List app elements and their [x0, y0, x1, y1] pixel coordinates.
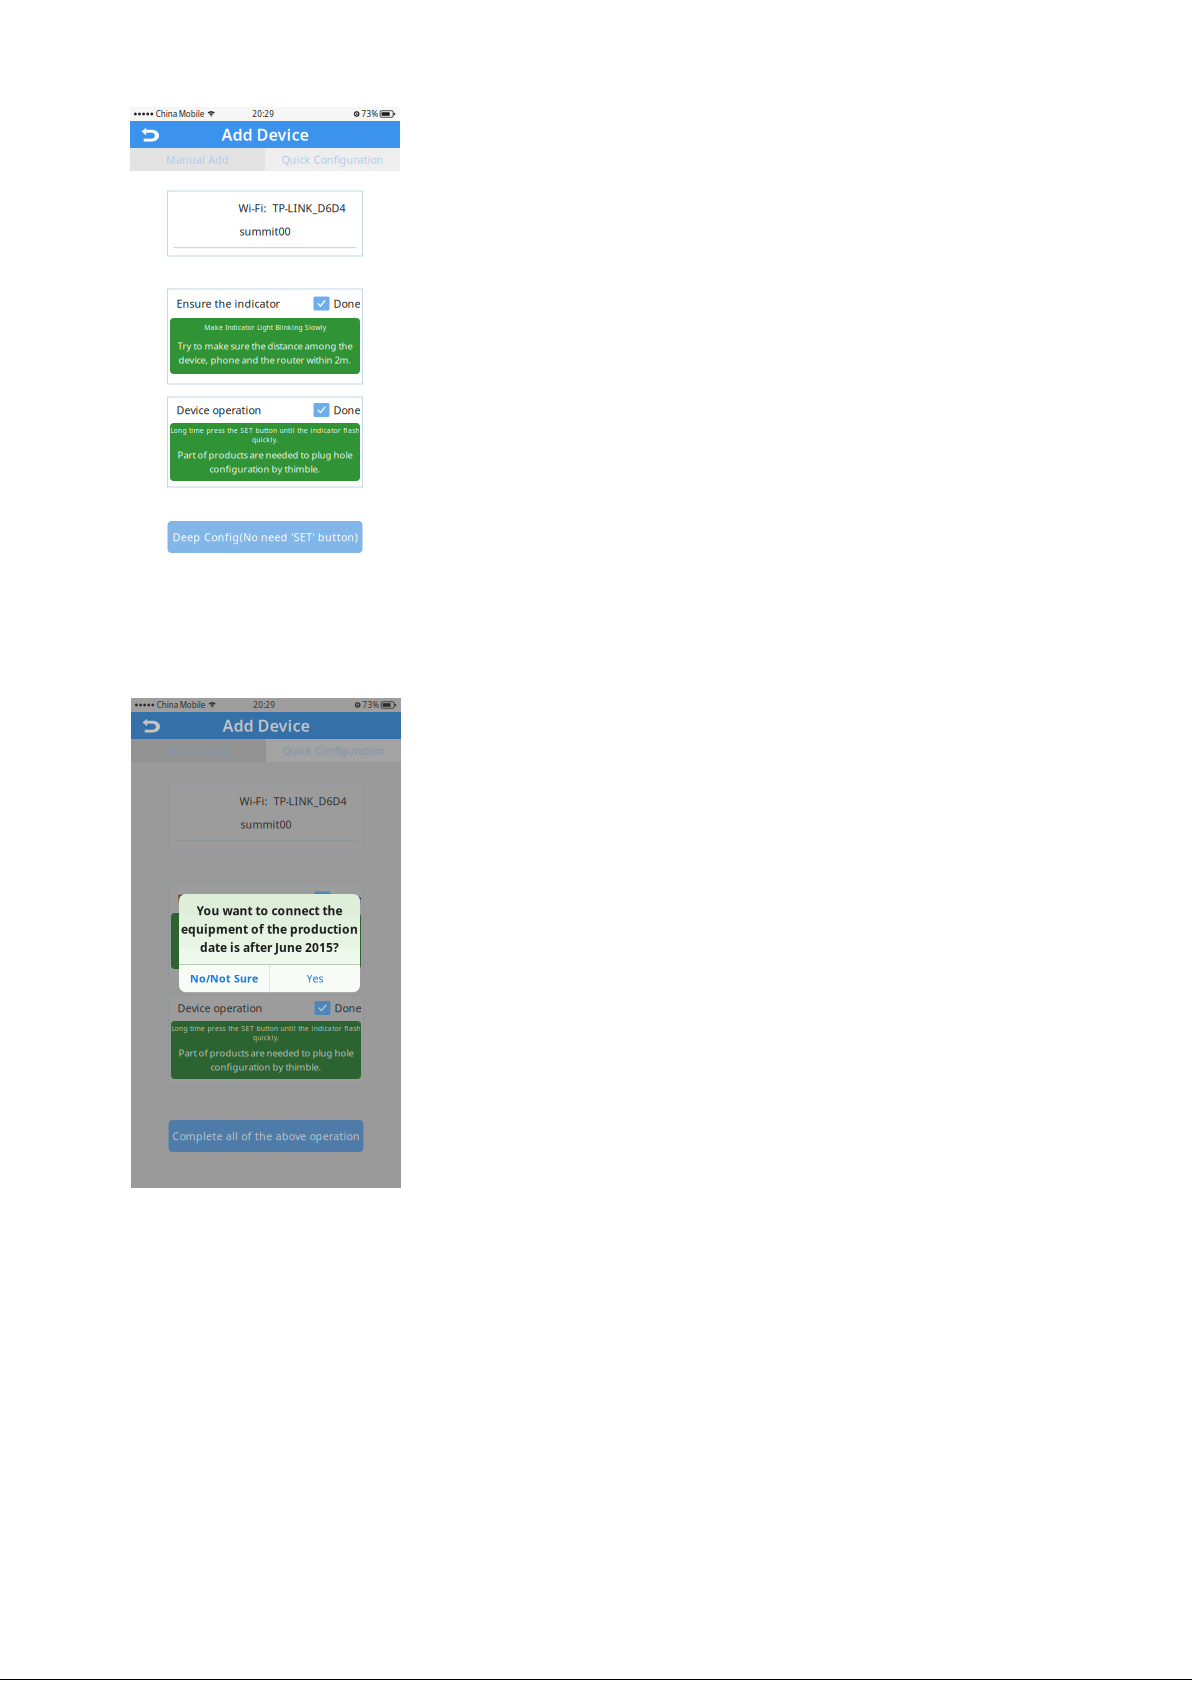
button[interactable]: Manual Add: [131, 739, 266, 762]
button[interactable]: Done: [314, 891, 361, 906]
staticText: Deep Config(No need 'SET' button): [172, 530, 357, 544]
staticText: Wi-Fi: TP-LINK_D6D4: [238, 201, 345, 215]
staticText: Manual Add: [167, 743, 230, 758]
staticText: configuration by thimble.: [209, 463, 320, 475]
staticText: Device operation: [177, 1001, 262, 1015]
button[interactable]: No/Not Sure: [179, 965, 269, 992]
staticText: quickly.: [252, 435, 278, 444]
staticText: Try to make sure the distance among the: [177, 340, 352, 352]
staticText: Done: [333, 403, 360, 417]
staticText: quickly.: [253, 1033, 279, 1042]
button[interactable]: Yes: [270, 965, 360, 992]
button[interactable]: Deep Config(No need 'SET' button): [167, 521, 362, 553]
staticText: 20:29: [252, 109, 274, 119]
staticText: Make Indicator Light Blinking Slowly: [205, 918, 327, 927]
staticText: date is after June 2015?: [200, 939, 339, 955]
button[interactable]: Back: [131, 712, 165, 739]
button[interactable]: Quick Configuration: [265, 148, 400, 171]
button[interactable]: Done: [313, 403, 360, 417]
staticText: You want to connect the: [196, 903, 342, 918]
staticText: device, phone and the router within 2m.: [179, 949, 352, 961]
button[interactable]: Done: [314, 1001, 361, 1015]
staticText: Quick Configuration: [281, 152, 383, 167]
staticText: Done: [333, 296, 360, 311]
staticText: equipment of the production: [181, 921, 358, 937]
staticText: Done: [334, 891, 361, 906]
staticText: Long time press the SET button until the…: [171, 1024, 360, 1033]
staticText: device, phone and the router within 2m.: [178, 354, 351, 366]
staticText: Wi-Fi: TP-LINK_D6D4: [239, 794, 346, 808]
staticText: Make Indicator Light Blinking Slowly: [204, 323, 326, 332]
staticText: China Mobile: [157, 700, 206, 710]
button[interactable]: Back: [130, 121, 164, 148]
staticText: Quick Configuration: [282, 743, 384, 758]
button[interactable]: Quick Configuration: [266, 739, 401, 762]
staticText: Part of products are needed to plug hole: [178, 1047, 353, 1059]
staticText: Device operation: [176, 403, 261, 417]
staticText: Manual Add: [166, 152, 229, 167]
staticText: Part of products are needed to plug hole: [177, 449, 352, 461]
button[interactable]: Done: [313, 296, 360, 311]
staticText: configuration by thimble.: [210, 1061, 321, 1073]
staticText: Add Device: [221, 124, 308, 145]
staticText: Add Device: [222, 715, 309, 736]
staticText: 20:29: [253, 700, 275, 710]
staticText: Long time press the SET button until the…: [170, 426, 359, 435]
staticText: 73%: [362, 700, 379, 710]
staticText: 73%: [361, 109, 378, 119]
staticText: China Mobile: [156, 109, 205, 119]
staticText: summit00: [240, 817, 291, 831]
staticText: summit00: [239, 224, 290, 238]
staticText: Complete all of the above operation: [172, 1129, 360, 1143]
staticText: Done: [334, 1001, 361, 1015]
button[interactable]: Manual Add: [130, 148, 265, 171]
staticText: Try to make sure the distance among the: [178, 935, 353, 947]
staticText: Yes: [306, 971, 323, 986]
staticText: Ensure the indicator: [177, 891, 280, 906]
staticText: Ensure the indicator: [176, 296, 279, 311]
staticText: No/Not Sure: [190, 971, 258, 986]
button[interactable]: Complete all of the above operation: [168, 1120, 363, 1152]
